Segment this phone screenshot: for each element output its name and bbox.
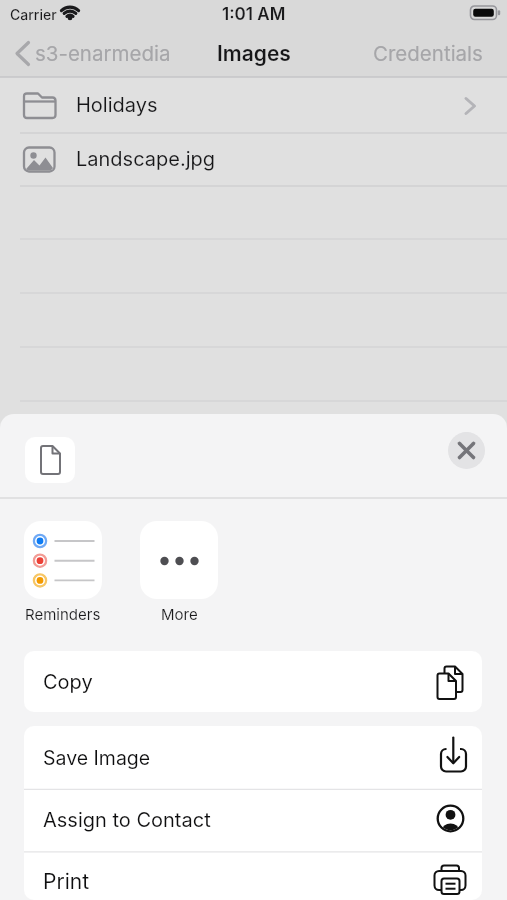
staticText: Landscape.jpg bbox=[76, 147, 216, 171]
staticText: s3-enarmedia bbox=[35, 41, 171, 66]
staticText: Save Image bbox=[43, 746, 151, 770]
staticText: Print bbox=[43, 869, 90, 894]
button[interactable] bbox=[448, 432, 485, 469]
button[interactable] bbox=[370, 35, 490, 72]
staticText: More bbox=[161, 605, 198, 623]
staticText: Assign to Contact bbox=[43, 808, 211, 832]
button[interactable] bbox=[0, 77, 507, 133]
button[interactable] bbox=[24, 852, 482, 900]
button[interactable] bbox=[140, 521, 218, 599]
staticText: Reminders bbox=[25, 605, 101, 623]
staticText: Images bbox=[217, 41, 291, 66]
button[interactable] bbox=[0, 133, 507, 186]
staticText: 1:01 AM bbox=[222, 4, 286, 25]
staticText: Credentials bbox=[373, 41, 483, 66]
staticText: Holidays bbox=[76, 93, 158, 117]
button[interactable] bbox=[24, 726, 482, 789]
staticText: Carrier bbox=[10, 6, 57, 23]
button[interactable] bbox=[24, 789, 482, 852]
button[interactable] bbox=[24, 521, 102, 599]
staticText: Copy bbox=[43, 670, 93, 694]
button[interactable] bbox=[24, 651, 482, 712]
button[interactable] bbox=[10, 35, 180, 72]
